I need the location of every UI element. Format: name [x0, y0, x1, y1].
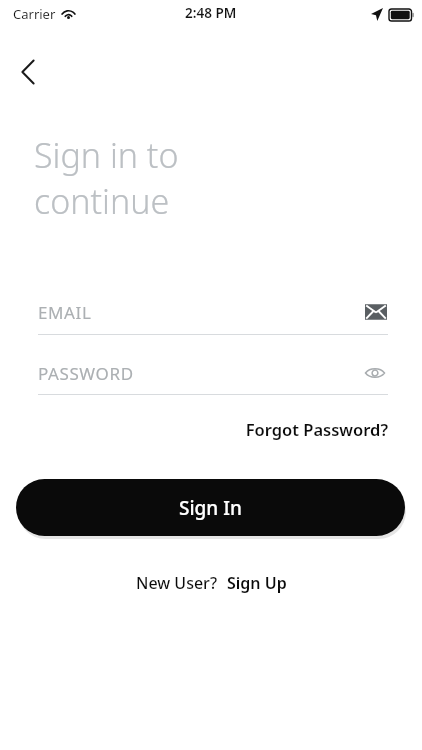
button[interactable]: EMAIL	[38, 294, 388, 336]
staticText: Forgot Password?	[245, 418, 388, 440]
staticText: continue	[34, 178, 170, 224]
staticText: Sign In	[179, 495, 242, 521]
button[interactable]: Sign In	[16, 479, 405, 536]
staticText: PASSWORD	[38, 362, 134, 385]
button[interactable]: PASSWORD	[38, 355, 388, 397]
staticText: Sign in to	[34, 132, 179, 178]
button[interactable]: Sign Up	[227, 572, 287, 594]
staticText: EMAIL	[38, 301, 92, 324]
staticText: 2:48 PM	[185, 4, 237, 22]
other: Email	[364, 300, 388, 324]
button[interactable]: Back	[8, 52, 48, 92]
staticText: New User?	[136, 572, 218, 594]
staticText: Sign Up	[227, 572, 287, 594]
other: Show password	[363, 361, 387, 385]
staticText: Carrier	[13, 5, 56, 23]
button[interactable]: Forgot Password?	[228, 414, 388, 444]
